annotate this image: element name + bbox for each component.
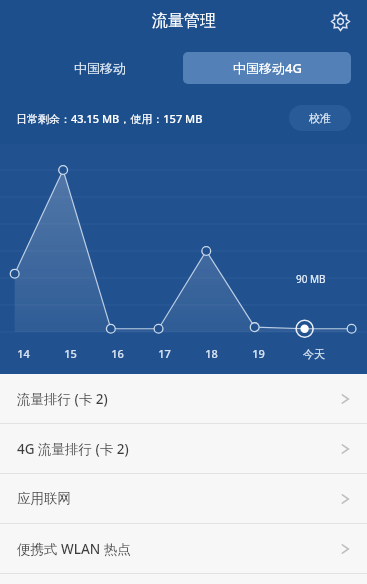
staticText: 应用联网	[17, 490, 71, 507]
staticText: 今天	[303, 347, 325, 361]
staticText: 17	[158, 346, 171, 361]
button[interactable]: 便携式 WLAN 热点	[0, 524, 367, 573]
button[interactable]: 中国移动4G	[183, 52, 351, 84]
button[interactable]: 流量排行 (卡 2)	[0, 374, 367, 423]
staticText: 16	[111, 346, 124, 361]
staticText: 15	[64, 346, 77, 361]
staticText: 90 MB	[296, 272, 326, 286]
button[interactable]: 4G 流量排行 (卡 2)	[0, 424, 367, 473]
staticText: 流量管理	[152, 11, 216, 31]
button[interactable]: Settings	[323, 4, 357, 38]
button[interactable]: 校准	[289, 105, 351, 131]
staticText: 中国移动	[74, 60, 126, 76]
staticText: 校准	[309, 111, 331, 125]
staticText: 流量排行 (卡 2)	[17, 390, 108, 408]
staticText: 14	[17, 346, 30, 361]
staticText: 18	[205, 346, 218, 361]
button[interactable]: 应用联网	[0, 474, 367, 523]
button[interactable]: 中国移动	[16, 52, 183, 84]
staticText: 中国移动4G	[233, 59, 302, 77]
staticText: 便携式 WLAN 热点	[17, 540, 131, 558]
staticText: 日常剩余：43.15 MB，使用：157 MB	[16, 111, 203, 126]
staticText: 19	[252, 346, 265, 361]
staticText: 4G 流量排行 (卡 2)	[17, 440, 129, 458]
